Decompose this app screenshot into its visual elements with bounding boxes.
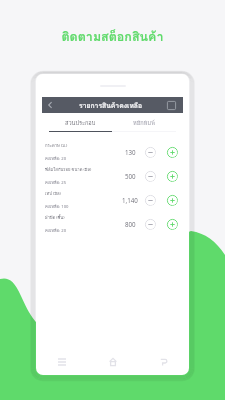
button[interactable]: กระดาษ (ม.) xyxy=(42,140,183,164)
staticText: ส่วนประกอบ xyxy=(65,119,96,128)
button[interactable]: ฟิล์มใสกันรอย ขนาด (มิล) xyxy=(42,164,183,188)
staticText: หมึกพิมพ์ xyxy=(133,119,155,128)
button[interactable]: ฝาปิด (ชิ้น) xyxy=(42,212,183,236)
staticText: ฝาปิด (ชิ้น) xyxy=(45,214,65,221)
staticText: ติดตามสต็อกสินค้า xyxy=(0,27,225,47)
button[interactable]: ส่วนประกอบ xyxy=(49,113,112,133)
button[interactable]: หมึกพิมพ์ xyxy=(112,113,176,133)
button[interactable]: Decrease เทป (มิล) xyxy=(144,194,156,206)
staticText: 130 xyxy=(125,148,136,156)
staticText: กระดาษ (ม.) xyxy=(45,142,68,149)
button[interactable]: Home xyxy=(106,355,120,369)
staticText: 1,140 xyxy=(122,196,138,204)
button[interactable]: Decrease ฝาปิด (ชิ้น) xyxy=(144,218,156,230)
staticText: เทป (มิล) xyxy=(45,190,61,197)
button[interactable]: Recents xyxy=(55,355,69,369)
button[interactable]: Decrease ฟิล์มใสกันรอย ขนาด (มิล) xyxy=(144,170,156,182)
button[interactable]: เทป (มิล) xyxy=(42,188,183,212)
staticText: รายการสินค้าคงเหลือ xyxy=(79,100,143,111)
button[interactable]: Increase ฝาปิด (ชิ้น) xyxy=(166,218,178,230)
button[interactable]: Decrease กระดาษ (ม.) xyxy=(144,146,156,158)
staticText: คงเหลือ: 20 xyxy=(45,227,67,234)
button[interactable]: Increase กระดาษ (ม.) xyxy=(166,146,178,158)
staticText: คงเหลือ: 100 xyxy=(45,203,69,210)
button[interactable]: Increase ฟิล์มใสกันรอย ขนาด (มิล) xyxy=(166,170,178,182)
staticText: 500 xyxy=(125,172,136,180)
staticText: ฟิล์มใสกันรอย ขนาด (มิล) xyxy=(45,166,92,173)
button[interactable]: Add item xyxy=(167,99,180,111)
button[interactable]: Back xyxy=(157,355,171,369)
button[interactable]: Increase เทป (มิล) xyxy=(166,194,178,206)
staticText: 800 xyxy=(125,220,136,228)
staticText: คงเหลือ: 20 xyxy=(45,155,67,162)
button[interactable]: Back xyxy=(45,100,55,110)
staticText: คงเหลือ: 25 xyxy=(45,179,67,186)
